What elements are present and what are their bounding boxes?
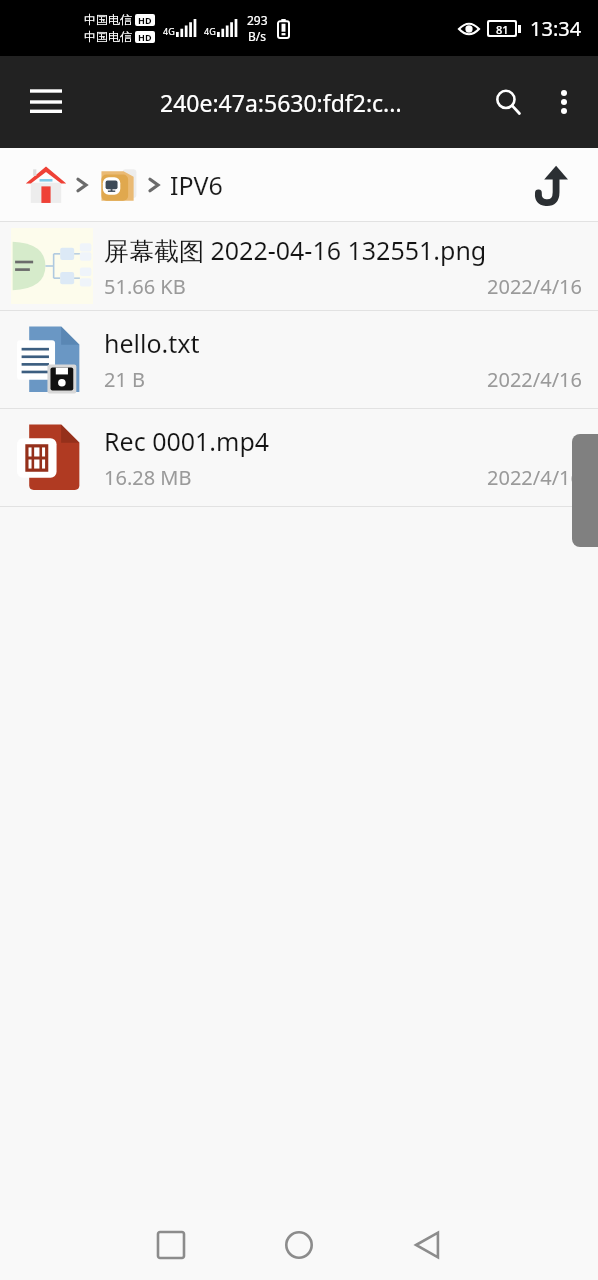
staticText: 屏幕截图 2022-04-16 132551.png: [104, 233, 487, 267]
staticText: 81: [496, 22, 509, 35]
staticText: 2022/4/16: [487, 366, 582, 393]
staticText: hello.txt: [104, 326, 200, 360]
button[interactable]: Go up: [526, 159, 578, 211]
button[interactable]: hello.txt: [0, 311, 598, 408]
button[interactable]: 屏幕截图 2022-04-16 132551.png: [0, 222, 598, 310]
staticText: 4G: [204, 25, 216, 37]
staticText: 16.28 MB: [104, 464, 192, 491]
staticText: 2022/4/16: [487, 273, 582, 300]
staticText: B/s: [248, 28, 267, 44]
button[interactable]: Device folder: [92, 159, 144, 211]
staticText: HD: [138, 31, 152, 43]
staticText: 21 B: [104, 366, 146, 393]
button[interactable]: Home: [256, 1210, 342, 1280]
staticText: 240e:47a:5630:fdf2:c...: [160, 87, 402, 118]
button[interactable]: Rec 0001.mp4: [0, 409, 598, 506]
staticText: 4G: [163, 25, 175, 37]
staticText: Rec 0001.mp4: [104, 424, 270, 458]
button[interactable]: Menu: [16, 72, 76, 132]
button[interactable]: IPV6: [164, 162, 229, 208]
staticText: IPV6: [170, 168, 223, 202]
button[interactable]: More options: [536, 74, 592, 130]
staticText: 51.66 KB: [104, 273, 186, 300]
staticText: 13:34: [530, 15, 582, 42]
staticText: 中国电信: [84, 12, 132, 27]
staticText: 2022/4/16: [487, 464, 582, 491]
button[interactable]: Back: [384, 1210, 470, 1280]
staticText: HD: [138, 14, 152, 26]
button[interactable]: Home: [20, 159, 72, 211]
button[interactable]: Recents: [128, 1210, 214, 1280]
button[interactable]: Search: [480, 74, 536, 130]
staticText: 中国电信: [84, 29, 132, 44]
button[interactable]: Scroll: [572, 434, 598, 547]
staticText: 293: [247, 12, 268, 28]
